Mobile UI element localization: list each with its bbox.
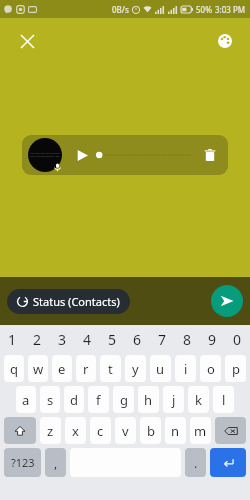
button[interactable]: Play (74, 147, 90, 163)
button[interactable]: p (225, 355, 246, 382)
button[interactable]: Backspace (215, 417, 246, 444)
button[interactable]: m (190, 417, 211, 444)
button[interactable]: Send (211, 285, 243, 317)
button[interactable]: 3 (50, 325, 75, 353)
staticText: Status (Contacts) (33, 294, 120, 309)
button[interactable]: Status (Contacts) (7, 289, 130, 314)
staticText: a (22, 391, 30, 409)
button[interactable]: x (65, 417, 86, 444)
button[interactable]: n (165, 417, 186, 444)
staticText: 5 (108, 330, 117, 349)
staticText: 3 (58, 330, 67, 349)
button[interactable]: h (138, 386, 159, 413)
staticText: 7 (158, 330, 167, 349)
staticText: t (108, 360, 113, 378)
button[interactable]: 2 (25, 325, 50, 353)
staticText: o (207, 360, 215, 378)
button[interactable]: w (28, 355, 48, 382)
staticText: ?123 (11, 455, 35, 470)
staticText: r (83, 360, 89, 378)
button[interactable]: k (188, 386, 209, 413)
button[interactable]: y (125, 355, 146, 382)
staticText: e (58, 360, 66, 378)
staticText: 4 (83, 330, 92, 349)
staticText: v (122, 422, 129, 440)
staticText: 9 (208, 330, 217, 349)
staticText: 2 (33, 330, 42, 349)
staticText: l (222, 391, 226, 409)
button[interactable]: 8 (175, 325, 200, 353)
staticText: z (47, 422, 54, 440)
staticText: 6 (133, 330, 142, 349)
staticText: 0B/s (112, 4, 129, 15)
staticText: q (10, 360, 18, 378)
staticText: c (97, 422, 104, 440)
button[interactable]: 1 (0, 325, 25, 353)
staticText: i (184, 360, 188, 378)
staticText: . (194, 455, 198, 471)
button[interactable]: j (163, 386, 184, 413)
staticText: h (144, 391, 153, 409)
button[interactable]: g (113, 386, 134, 413)
staticText: b (147, 422, 155, 440)
button[interactable]: ?123 (4, 448, 41, 477)
staticText: s (47, 391, 54, 409)
staticText: w (33, 360, 44, 378)
button[interactable]: Delete (202, 147, 218, 163)
staticText: d (70, 391, 78, 409)
button[interactable]: t (100, 355, 121, 382)
button[interactable]: i (175, 355, 196, 382)
button[interactable]: b (140, 417, 161, 444)
button[interactable]: Close (14, 28, 40, 54)
staticText: , (54, 455, 58, 471)
button[interactable]: u (150, 355, 171, 382)
button[interactable]: 5 (100, 325, 125, 353)
staticText: 1 (8, 330, 17, 349)
staticText: y (132, 360, 139, 378)
staticText: f (96, 391, 101, 409)
button[interactable]: c (90, 417, 111, 444)
button[interactable]: Color palette (212, 28, 238, 54)
staticText: 50% (196, 4, 212, 15)
button[interactable]: 6 (125, 325, 150, 353)
button[interactable]: Shift (4, 417, 36, 444)
staticText: m (194, 422, 207, 440)
staticText: j (172, 391, 176, 409)
button[interactable]: z (40, 417, 61, 444)
button[interactable]: l (213, 386, 234, 413)
staticText: p (232, 360, 240, 378)
button[interactable]: 4 (75, 325, 100, 353)
button[interactable]: f (88, 386, 109, 413)
button[interactable]: o (200, 355, 221, 382)
staticText: 8 (183, 330, 192, 349)
staticText: 0 (233, 330, 242, 349)
staticText: n (171, 422, 180, 440)
button[interactable]: q (4, 355, 24, 382)
staticText: They said I was the best around and I sh… (30, 152, 60, 158)
button[interactable]: s (40, 386, 60, 413)
button[interactable]: e (52, 355, 72, 382)
staticText: u (156, 360, 165, 378)
button[interactable]: Enter (210, 448, 246, 477)
button[interactable]: 7 (150, 325, 175, 353)
button[interactable]: 9 (200, 325, 225, 353)
button[interactable]: d (64, 386, 84, 413)
button[interactable]: v (115, 417, 136, 444)
button[interactable]: , (45, 448, 66, 477)
staticText: k (195, 391, 202, 409)
button[interactable]: . (185, 448, 206, 477)
button[interactable]: r (76, 355, 96, 382)
button[interactable]: a (16, 386, 36, 413)
staticText: 3:03 PM (215, 4, 246, 15)
button[interactable]: 0 (225, 325, 250, 353)
staticText: x (72, 422, 79, 440)
staticText: g (120, 391, 128, 409)
